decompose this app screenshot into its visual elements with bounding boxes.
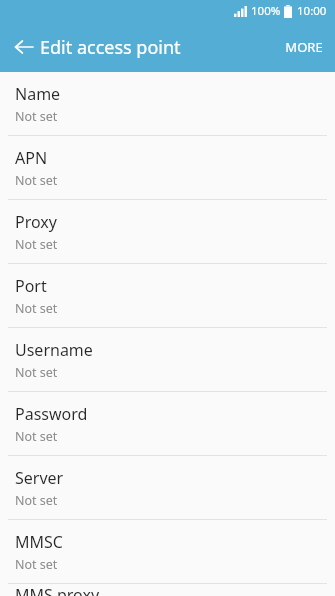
staticText: Not set xyxy=(15,556,58,573)
button[interactable]: Password xyxy=(0,392,335,456)
button[interactable]: Navigate up xyxy=(4,27,44,67)
staticText: Edit access point xyxy=(40,35,181,60)
staticText: APN xyxy=(15,147,48,169)
staticText: Server xyxy=(15,467,64,489)
staticText: MORE xyxy=(285,38,323,56)
staticText: Not set xyxy=(15,428,58,445)
staticText: MMSC xyxy=(15,531,63,553)
staticText: 100% xyxy=(251,3,281,19)
button[interactable]: Name xyxy=(0,72,335,136)
staticText: Not set xyxy=(15,364,58,381)
staticText: Not set xyxy=(15,492,58,509)
button[interactable]: Proxy xyxy=(0,200,335,264)
button[interactable]: Port xyxy=(0,264,335,328)
button[interactable]: Server xyxy=(0,456,335,520)
staticText: Username xyxy=(15,339,93,361)
staticText: Not set xyxy=(15,108,58,125)
button[interactable]: MORE xyxy=(273,28,335,66)
staticText: Password xyxy=(15,403,88,425)
staticText: Name xyxy=(15,83,61,105)
staticText: Port xyxy=(15,275,47,297)
staticText: Proxy xyxy=(15,211,57,233)
button[interactable]: Username xyxy=(0,328,335,392)
staticText: MMS proxy xyxy=(15,584,100,596)
staticText: Not set xyxy=(15,236,58,253)
staticText: 10:00 xyxy=(297,3,327,19)
staticText: Not set xyxy=(15,300,58,317)
button[interactable]: APN xyxy=(0,136,335,200)
button[interactable]: MMS proxy xyxy=(0,584,335,596)
staticText: Not set xyxy=(15,172,58,189)
button[interactable]: MMSC xyxy=(0,520,335,584)
